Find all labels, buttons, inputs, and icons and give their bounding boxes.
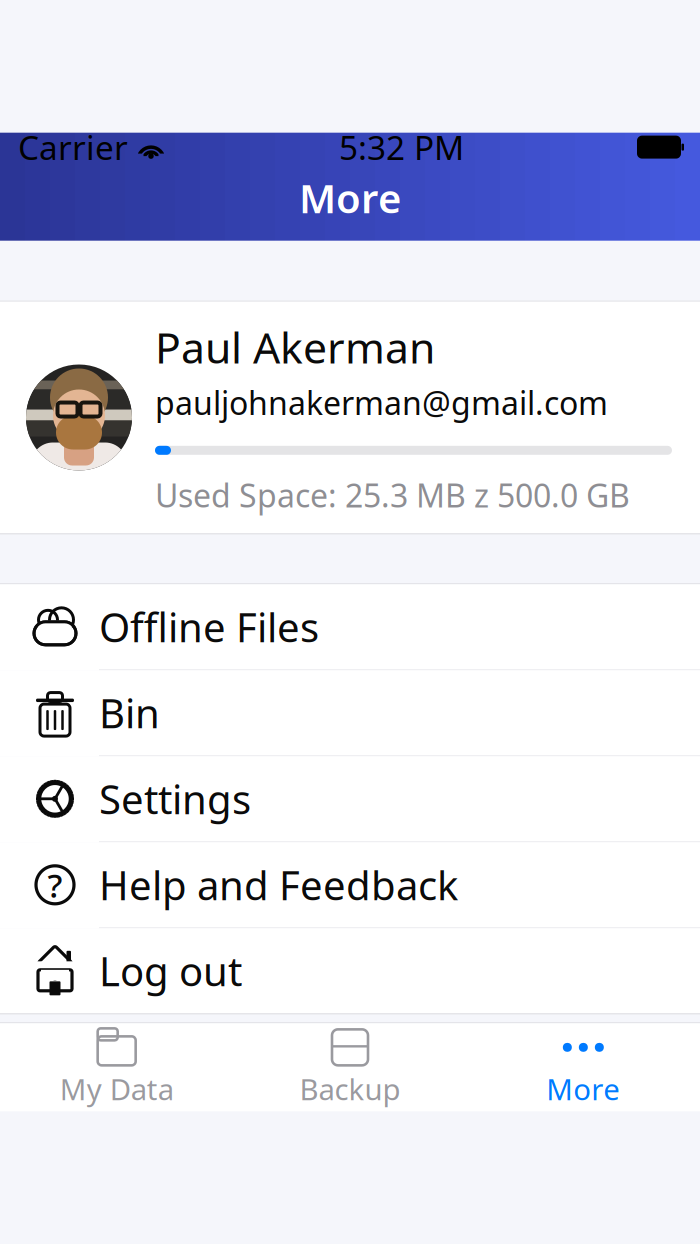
staticText: Paul Akerman: [155, 319, 435, 375]
button[interactable]: Paul Akerman: [0, 302, 700, 533]
staticText: Backup: [299, 1069, 400, 1108]
button[interactable]: My Data: [0, 1023, 233, 1111]
button[interactable]: Backup: [233, 1023, 467, 1111]
staticText: My Data: [60, 1069, 174, 1108]
staticText: Help and Feedback: [99, 858, 458, 911]
staticText: pauljohnakerman@gmail.com: [155, 381, 608, 424]
staticText: More: [546, 1069, 620, 1108]
button[interactable]: Log out: [0, 928, 700, 1013]
staticText: More: [299, 171, 401, 224]
staticText: Used Space: 25.3 MB z 500.0 GB: [155, 474, 630, 516]
button[interactable]: More: [467, 1023, 700, 1111]
button[interactable]: Offline Files: [0, 584, 700, 670]
staticText: Log out: [99, 944, 242, 997]
staticText: Carrier: [18, 125, 128, 169]
button[interactable]: Bin: [0, 670, 700, 756]
staticText: Settings: [99, 772, 251, 825]
staticText: Bin: [99, 686, 160, 739]
button[interactable]: ?: [0, 842, 700, 928]
staticText: 5:32 PM: [339, 125, 464, 169]
staticText: ?: [47, 863, 62, 907]
button[interactable]: Settings: [0, 756, 700, 842]
staticText: Offline Files: [99, 600, 319, 653]
